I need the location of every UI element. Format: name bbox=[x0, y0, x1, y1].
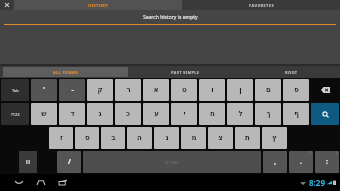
button[interactable]: ח bbox=[199, 103, 225, 125]
button[interactable]: כ bbox=[115, 103, 141, 125]
button[interactable]: , bbox=[263, 151, 287, 173]
button[interactable]: ה bbox=[127, 127, 152, 149]
staticText: נ bbox=[165, 134, 169, 142]
button[interactable]: ס bbox=[75, 127, 99, 149]
staticText: ם bbox=[266, 86, 271, 94]
staticText: ALL FORMS bbox=[53, 70, 78, 75]
button[interactable]: Home bbox=[30, 174, 52, 191]
staticText: FAVORITES bbox=[249, 3, 274, 8]
button[interactable]: צ bbox=[208, 127, 233, 149]
staticText: / bbox=[68, 157, 71, 167]
button[interactable]: / bbox=[57, 151, 81, 173]
staticText: PAST SIMPLE bbox=[171, 70, 200, 75]
staticText: . bbox=[300, 157, 302, 167]
staticText: ח bbox=[210, 110, 215, 118]
staticText: - bbox=[71, 85, 74, 95]
staticText: ' bbox=[43, 85, 45, 95]
button[interactable]: ם bbox=[255, 79, 281, 101]
staticText: 8:29 bbox=[309, 177, 325, 188]
button[interactable]: HISTORY bbox=[14, 0, 182, 10]
button[interactable]: ת bbox=[235, 127, 260, 149]
staticText: צ bbox=[218, 134, 223, 142]
staticText: פ bbox=[294, 86, 299, 94]
button[interactable]: ו bbox=[199, 79, 225, 101]
staticText: ה bbox=[137, 134, 142, 142]
staticText: , bbox=[274, 157, 276, 167]
button[interactable]: נ bbox=[154, 127, 179, 149]
button[interactable]: ג bbox=[87, 103, 113, 125]
button[interactable]: : bbox=[315, 151, 339, 173]
button[interactable]: Close bbox=[0, 0, 14, 10]
staticText: מ bbox=[191, 134, 197, 142]
staticText: ף bbox=[294, 110, 299, 118]
button[interactable]: ש bbox=[31, 103, 57, 125]
staticText: ב bbox=[111, 134, 116, 142]
button[interactable]: ף bbox=[283, 103, 309, 125]
staticText: ר bbox=[126, 86, 131, 94]
button[interactable]: א bbox=[143, 79, 169, 101]
button[interactable]: מ bbox=[181, 127, 206, 149]
staticText: ד bbox=[70, 110, 75, 118]
button[interactable]: ע bbox=[143, 103, 169, 125]
button[interactable]: ך bbox=[255, 103, 281, 125]
staticText: : bbox=[326, 157, 328, 167]
button[interactable]: Hide keyboard bbox=[8, 174, 30, 191]
button[interactable]: ROOT bbox=[243, 66, 340, 78]
button[interactable]: ד bbox=[59, 103, 85, 125]
staticText: ן bbox=[239, 86, 242, 94]
button[interactable]: ז bbox=[49, 127, 73, 149]
button[interactable]: ץ bbox=[262, 127, 287, 149]
staticText: HISTORY bbox=[88, 3, 109, 8]
button[interactable]: . bbox=[289, 151, 313, 173]
staticText: ו bbox=[211, 86, 214, 94]
staticText: ט bbox=[182, 86, 187, 94]
staticText: עברית bbox=[165, 159, 179, 165]
button[interactable]: Change language bbox=[19, 151, 37, 173]
button[interactable]: - bbox=[59, 79, 85, 101]
staticText: ? bbox=[310, 151, 312, 155]
button[interactable]: Tab bbox=[1, 79, 29, 101]
button[interactable]: FAVORITES bbox=[182, 0, 340, 10]
staticText: א bbox=[153, 86, 159, 94]
button[interactable]: ' bbox=[31, 79, 57, 101]
button[interactable]: Recent apps bbox=[52, 174, 74, 191]
staticText: ז bbox=[60, 134, 63, 142]
button[interactable]: ב bbox=[101, 127, 125, 149]
staticText: Tab bbox=[12, 88, 19, 93]
button[interactable]: ר bbox=[115, 79, 141, 101]
button[interactable]: ALL FORMS bbox=[3, 67, 128, 77]
staticText: ס bbox=[85, 134, 90, 142]
staticText: ג bbox=[98, 110, 102, 118]
staticText: ROOT bbox=[285, 70, 298, 75]
button[interactable]: ן bbox=[227, 79, 253, 101]
staticText: Search history is empty bbox=[143, 14, 198, 21]
staticText: ל bbox=[238, 110, 243, 118]
staticText: + bbox=[336, 151, 338, 155]
button[interactable]: ק bbox=[87, 79, 113, 101]
button[interactable]: פ bbox=[283, 79, 309, 101]
staticText: ע bbox=[154, 110, 159, 118]
staticText: ! bbox=[285, 151, 286, 155]
button[interactable]: י bbox=[171, 103, 197, 125]
staticText: ש bbox=[41, 110, 47, 118]
staticText: כ bbox=[126, 110, 130, 118]
button[interactable]: Backspace bbox=[311, 79, 339, 101]
staticText: ק bbox=[97, 86, 103, 94]
staticText: ך bbox=[266, 110, 271, 118]
staticText: י bbox=[183, 110, 186, 118]
button[interactable]: ט bbox=[171, 79, 197, 101]
button[interactable]: Search bbox=[311, 103, 339, 125]
staticText: ?123 bbox=[11, 112, 20, 117]
staticText: ץ bbox=[272, 134, 277, 142]
staticText: ת bbox=[245, 134, 250, 142]
button[interactable]: ל bbox=[227, 103, 253, 125]
button[interactable]: PAST SIMPLE bbox=[128, 66, 243, 78]
button[interactable]: ?123 bbox=[1, 103, 29, 125]
